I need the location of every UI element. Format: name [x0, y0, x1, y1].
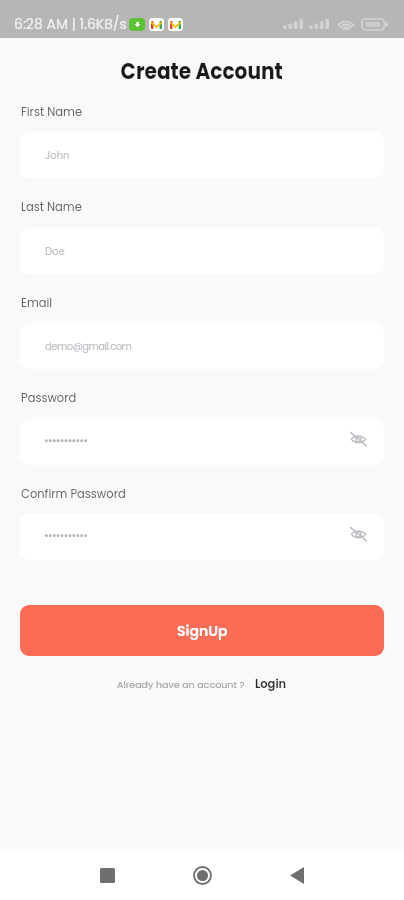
staticText: Password [21, 390, 77, 406]
staticText: John [45, 148, 70, 162]
button[interactable]: SignUp [20, 605, 384, 656]
staticText: Email [21, 295, 53, 311]
button[interactable]: Back [273, 852, 320, 899]
staticText: Already have an account ? [117, 678, 245, 691]
staticText: Create Account [121, 56, 283, 82]
button[interactable]: demo@gmail.com [20, 323, 384, 369]
staticText: First Name [21, 104, 83, 120]
staticText: Doe [45, 244, 65, 258]
button[interactable]: Doe [20, 228, 384, 274]
staticText: demo@gmail.com [45, 339, 132, 353]
staticText: Last Name [21, 199, 82, 215]
button[interactable]: Home [179, 852, 226, 899]
staticText: Confirm Password [21, 486, 126, 502]
button[interactable]: Toggle password visibility [345, 426, 371, 452]
button[interactable]: Toggle password visibility [20, 514, 384, 560]
staticText: 6:28 AM | 1.6KB/s [14, 14, 127, 34]
staticText: SignUp [177, 621, 228, 641]
staticText: Login [255, 676, 287, 692]
button[interactable]: John [20, 132, 384, 178]
button[interactable]: Recent apps [84, 852, 131, 899]
button[interactable]: Login [255, 676, 287, 692]
button[interactable]: Toggle password visibility [345, 521, 371, 547]
button[interactable]: Toggle password visibility [20, 419, 384, 465]
